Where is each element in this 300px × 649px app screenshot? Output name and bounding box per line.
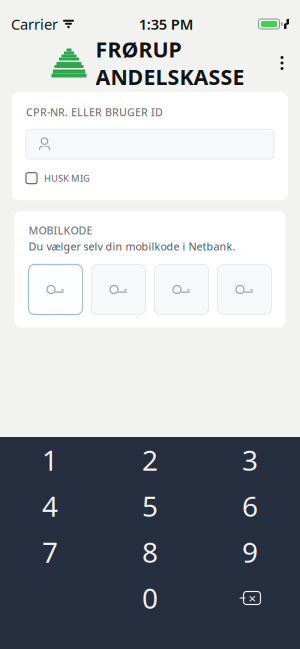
staticText: MOBILKODE	[28, 223, 92, 237]
staticText: CPR-NR. ELLER BRUGER ID	[26, 105, 163, 119]
button[interactable]	[26, 129, 274, 159]
staticText: 2	[142, 441, 158, 479]
button[interactable]: Mobilkode felt	[217, 264, 271, 314]
staticText: FRØRUP	[95, 35, 181, 63]
button[interactable]: 8	[100, 529, 200, 575]
button[interactable]: Menu	[268, 41, 296, 85]
button[interactable]: 1	[0, 437, 100, 483]
button[interactable]: 5	[100, 483, 200, 529]
staticText: HUSK MIG	[44, 172, 90, 184]
button[interactable]: 0	[100, 575, 200, 621]
button[interactable]: Mobilkode felt	[28, 264, 82, 314]
staticText: 9	[242, 533, 258, 571]
button[interactable]: HUSK MIG	[26, 168, 274, 188]
button[interactable]: 3	[200, 437, 300, 483]
staticText: 4	[42, 487, 58, 525]
button[interactable]: Mobilkode felt	[91, 264, 145, 314]
staticText: Carrier	[11, 14, 58, 34]
button[interactable]: 6	[200, 483, 300, 529]
button[interactable]: Mobilkode felt	[154, 264, 208, 314]
staticText: Du vælger selv din mobilkode i Netbank.	[28, 239, 235, 253]
staticText: 7	[42, 533, 58, 571]
button[interactable]: Slet	[200, 575, 300, 621]
staticText: 8	[142, 533, 158, 571]
staticText: 6	[242, 487, 258, 525]
staticText: 1:35 PM	[139, 14, 194, 34]
button[interactable]: 4	[0, 483, 100, 529]
staticText: ×	[248, 589, 256, 607]
staticText: 5	[142, 487, 158, 525]
staticText: ANDELSKASSE	[95, 62, 244, 91]
button[interactable]: 2	[100, 437, 200, 483]
button[interactable]: 9	[200, 529, 300, 575]
button[interactable]: 7	[0, 529, 100, 575]
staticText: 1	[42, 441, 58, 479]
staticText: 0	[142, 579, 158, 617]
staticText: 3	[242, 441, 258, 479]
